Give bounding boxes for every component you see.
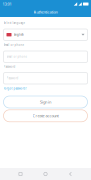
button[interactable]: Home <box>33 168 58 180</box>
staticText: Password <box>6 76 18 80</box>
button[interactable]: Recent apps <box>8 168 33 180</box>
staticText: Sign in <box>40 99 51 105</box>
staticText: Email or phone <box>3 43 24 47</box>
staticText: Create account <box>32 113 58 118</box>
button[interactable]: English <box>3 29 87 40</box>
staticText: Authentication <box>33 9 57 15</box>
staticText: Select language <box>3 21 25 25</box>
button[interactable]: Email or phone <box>3 51 87 62</box>
staticText: Password <box>3 65 15 68</box>
button[interactable]: Create account <box>3 110 87 122</box>
staticText: 13:01 <box>2 1 11 7</box>
button[interactable]: Password <box>3 73 87 84</box>
button[interactable]: Forgot password? <box>3 86 87 91</box>
button[interactable]: Sign in <box>3 96 87 108</box>
staticText: English <box>14 33 24 36</box>
staticText: Forgot password? <box>3 87 26 90</box>
button[interactable]: Back <box>58 168 83 180</box>
staticText: Email or phone <box>6 55 27 58</box>
